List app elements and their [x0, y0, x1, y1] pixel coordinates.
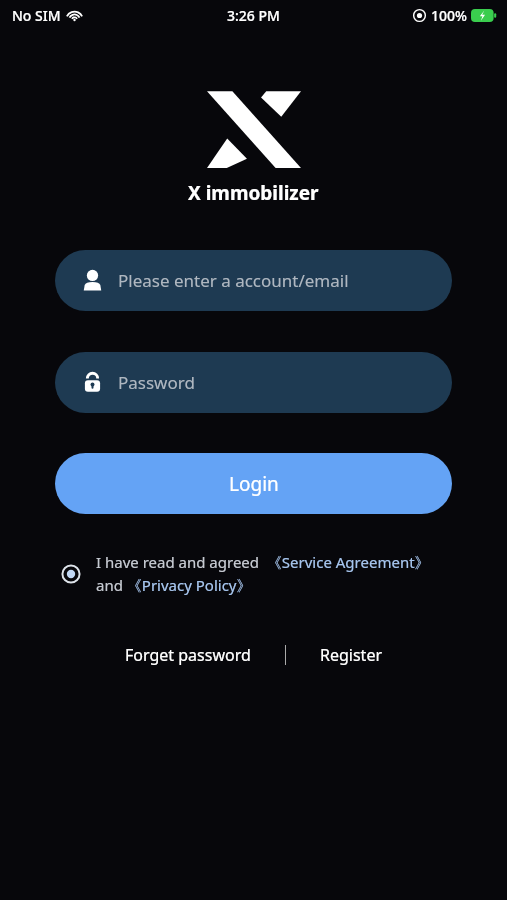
button[interactable]: Password [55, 352, 452, 413]
button[interactable]: Agree to terms [60, 552, 462, 596]
button[interactable]: Register [314, 640, 389, 670]
button[interactable]: Please enter a account/email [55, 250, 452, 311]
staticText: No SIM [12, 6, 61, 25]
button[interactable]: Login [55, 453, 452, 514]
staticText: X immobilizer [188, 180, 319, 206]
staticText: Please enter a account/email [118, 269, 349, 292]
staticText: 3:26 PM [227, 6, 280, 25]
staticText: Forget password [125, 644, 251, 666]
other: Agree to terms [60, 563, 82, 585]
staticText: Register [320, 644, 383, 666]
staticText: Password [118, 371, 195, 394]
staticText: Login [229, 471, 279, 497]
staticText: 100% [431, 6, 467, 25]
staticText: I have read and agreed 《Service Agreemen… [96, 552, 462, 596]
button[interactable]: Forget password [119, 640, 257, 670]
